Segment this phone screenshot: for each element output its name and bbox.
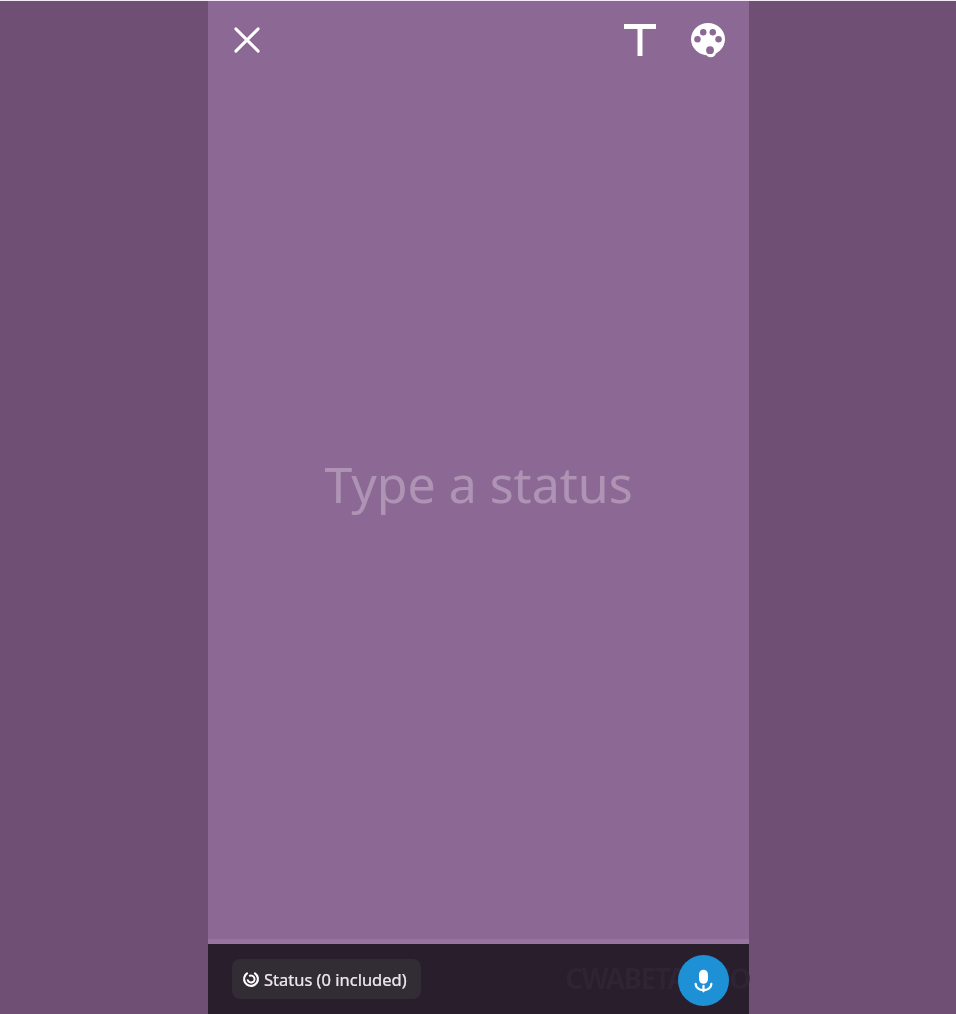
button[interactable]: Change font	[613, 13, 667, 67]
staticText: CWABETAINFO	[565, 959, 750, 997]
button[interactable]: Status (0 included)	[232, 959, 421, 999]
button[interactable]: Change background colour	[681, 13, 735, 67]
staticText: Status (0 included)	[264, 968, 407, 990]
staticText: Type a status	[324, 450, 633, 518]
button[interactable]: Close	[220, 13, 274, 67]
button[interactable]: Record voice status	[678, 955, 729, 1006]
